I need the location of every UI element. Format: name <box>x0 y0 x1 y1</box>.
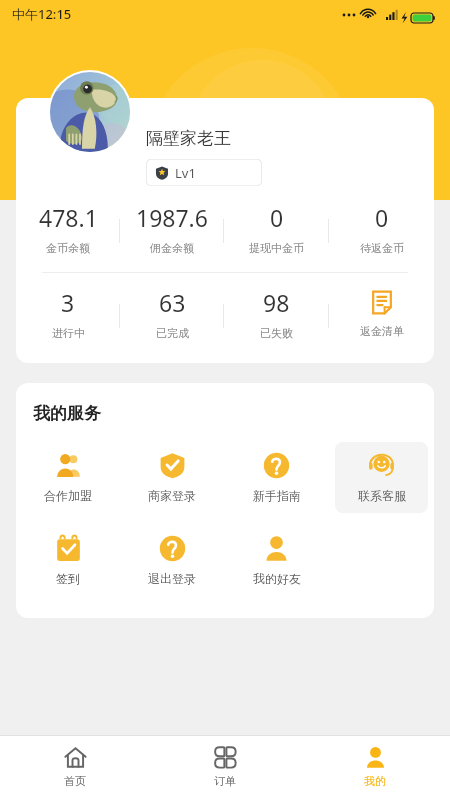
staticText: 退出登录 <box>148 571 196 586</box>
button[interactable]: 98 <box>224 287 329 343</box>
staticText: 478.1 <box>39 202 98 233</box>
staticText: 我的好友 <box>253 571 301 586</box>
button[interactable]: 我的 <box>300 736 450 800</box>
staticText: 新手指南 <box>253 488 301 503</box>
staticText: 返金清单 <box>360 324 404 338</box>
button[interactable]: 订单 <box>150 736 300 800</box>
button[interactable]: 签到 <box>22 525 114 596</box>
button[interactable]: 合作加盟 <box>22 442 114 513</box>
staticText: 金币余额 <box>46 241 90 255</box>
staticText: 首页 <box>64 774 86 788</box>
staticText: 佣金余额 <box>150 241 194 255</box>
button[interactable]: 我的好友 <box>230 525 323 596</box>
staticText: 合作加盟 <box>44 488 92 503</box>
button[interactable]: 新手指南 <box>230 442 323 513</box>
staticText: 待返金币 <box>360 241 404 255</box>
staticText: 1987.6 <box>136 202 208 233</box>
button[interactable]: 0 <box>224 202 329 258</box>
staticText: 63 <box>159 287 186 318</box>
staticText: 隔壁家老王 <box>146 128 231 149</box>
staticText: 3 <box>61 287 75 318</box>
staticText: 我的服务 <box>33 403 101 424</box>
staticText: 我的 <box>364 774 386 788</box>
staticText: 订单 <box>214 774 236 788</box>
button[interactable]: 63 <box>120 287 224 343</box>
staticText: 联系客服 <box>358 488 406 503</box>
button[interactable]: 3 <box>16 287 120 343</box>
staticText: 已完成 <box>156 326 189 340</box>
staticText: 签到 <box>56 571 80 586</box>
button[interactable]: 商家登录 <box>126 442 218 513</box>
button[interactable]: 0 <box>329 202 434 258</box>
button[interactable]: 1987.6 <box>120 202 224 258</box>
staticText: 商家登录 <box>148 488 196 503</box>
staticText: Lv1 <box>175 164 196 182</box>
staticText: 提现中金币 <box>249 241 304 255</box>
staticText: 进行中 <box>52 326 85 340</box>
staticText: 已失败 <box>260 326 293 340</box>
staticText: 0 <box>270 202 284 233</box>
button[interactable]: 联系客服 <box>335 442 428 513</box>
staticText: 98 <box>263 287 290 318</box>
button[interactable]: 返金清单 <box>329 287 434 343</box>
button[interactable]: 478.1 <box>16 202 120 258</box>
staticText: 中午12:15 <box>12 5 72 23</box>
staticText: 0 <box>375 202 389 233</box>
button[interactable]: Lv1 <box>146 159 262 186</box>
button[interactable]: 首页 <box>0 736 150 800</box>
button[interactable]: 退出登录 <box>126 525 218 596</box>
button[interactable]: Profile avatar <box>48 70 132 154</box>
